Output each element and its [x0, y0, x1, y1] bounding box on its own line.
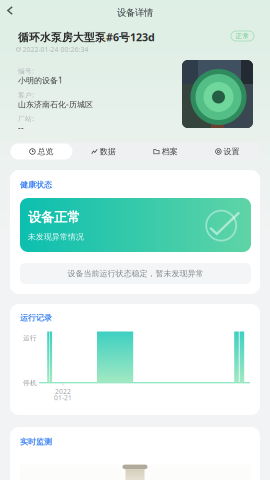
staticText: 2022-01-24 00:26:34	[22, 45, 88, 54]
staticText: 厂站:	[18, 114, 34, 123]
staticText: 设备当前运行状态稳定，暂未发现异常	[67, 269, 203, 278]
staticText: 小明的设备1	[18, 75, 63, 86]
staticText: 运行记录	[20, 313, 52, 323]
staticText: 设置	[224, 147, 240, 156]
staticText: 2022	[55, 387, 71, 396]
staticText: 设备正常	[28, 209, 80, 225]
staticText: 正常	[235, 32, 249, 40]
staticText: 总览	[38, 147, 54, 156]
button[interactable]: Back	[6, 5, 14, 15]
staticText: 山东济南石化-历城区	[18, 99, 93, 110]
staticText: 档案	[162, 147, 178, 156]
staticText: 设备详情	[117, 7, 153, 18]
button[interactable]: 总览	[10, 143, 72, 159]
staticText: 运行	[23, 334, 37, 342]
staticText: 循环水泵房大型泵#6号123d	[18, 30, 155, 44]
staticText: 数据	[100, 147, 116, 156]
button[interactable]: 正常	[231, 31, 254, 41]
button[interactable]: 设置	[196, 143, 258, 159]
staticText: 客户:	[18, 90, 34, 99]
button[interactable]: 数据	[72, 143, 134, 159]
staticText: 01-21	[54, 393, 72, 402]
staticText: 编号:	[18, 66, 34, 75]
staticText: 停机	[23, 379, 37, 387]
button[interactable]: 档案	[134, 143, 196, 159]
staticText: --	[18, 122, 24, 133]
staticText: 健康状态	[20, 180, 52, 190]
staticText: 未发现异常情况	[28, 232, 84, 242]
staticText: 实时监测	[20, 437, 52, 447]
